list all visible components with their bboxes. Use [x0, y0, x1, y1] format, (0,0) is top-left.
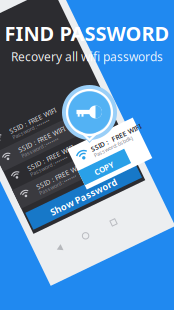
staticText: Password : ••••••• [11, 134, 52, 142]
staticText: Password : ••••••• [20, 153, 61, 160]
staticText: SSID : FREE WIFI [8, 128, 59, 137]
staticText: Show Password [48, 207, 121, 219]
staticText: UNLOCK [92, 160, 114, 167]
staticText: UNLOCK [74, 123, 96, 130]
staticText: FIND PASSWORD [4, 20, 169, 47]
staticText: Password : ••••••• [29, 172, 70, 179]
staticText: Recovery all wifi passwords [11, 49, 163, 64]
staticText: SSID : FREE WIFI [17, 146, 68, 155]
staticText: SSID : FREE WIFI [26, 165, 77, 174]
staticText: SSID : FREE WIFI [89, 146, 144, 155]
staticText: Password: 6sbdkj [92, 152, 134, 160]
staticText: UNLOCK [83, 141, 105, 148]
staticText: Password : ••••••• [38, 190, 79, 197]
staticText: SSID : FREE WIFI [35, 183, 86, 192]
staticText: COPY [92, 168, 113, 179]
staticText: UNLOCK [65, 104, 87, 111]
